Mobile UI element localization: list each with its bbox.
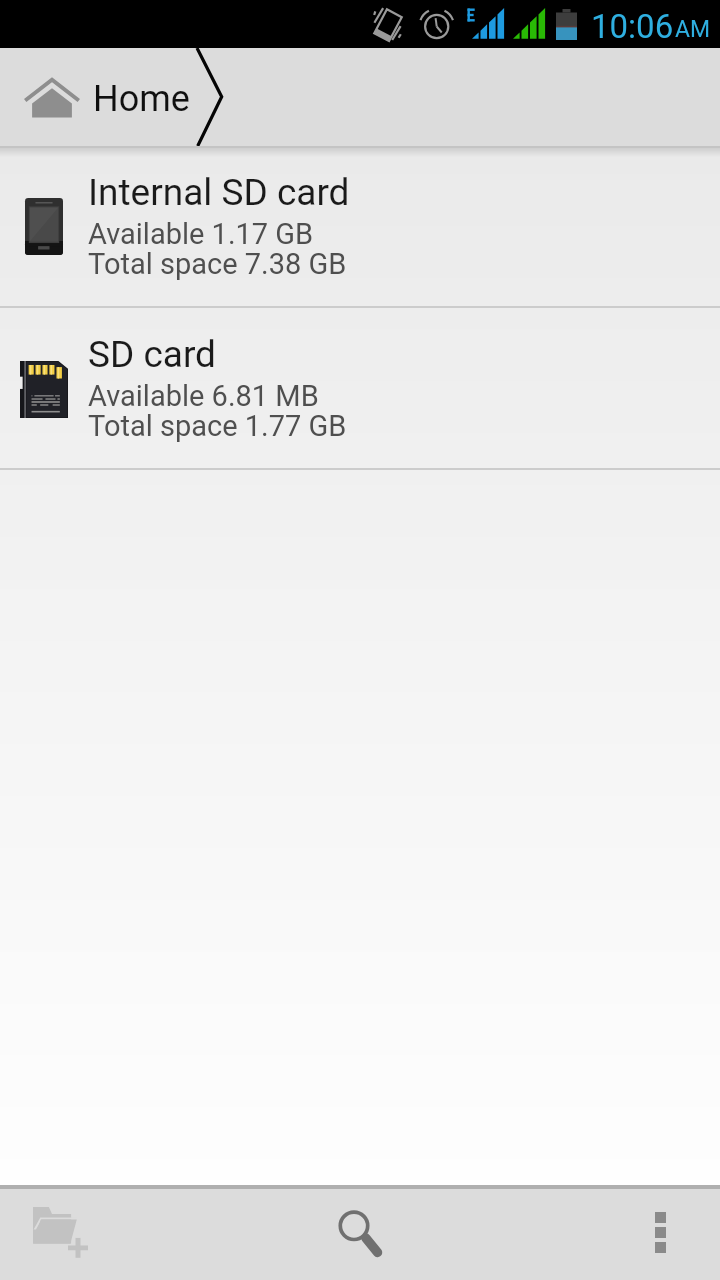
staticText: SD card (88, 333, 216, 376)
button[interactable]: More options (480, 1189, 720, 1280)
staticText: Total space 1.77 GB (88, 409, 347, 443)
button[interactable]: SD card (0, 308, 720, 468)
staticText: Home (93, 78, 190, 120)
staticText: 10:06 (591, 7, 674, 46)
button[interactable]: Home (0, 48, 720, 146)
button[interactable]: Internal SD card (0, 148, 720, 306)
button[interactable]: Search (240, 1189, 480, 1280)
staticText: Internal SD card (88, 171, 350, 214)
staticText: Available 6.81 MB (88, 379, 319, 413)
staticText: Total space 7.38 GB (88, 247, 347, 281)
staticText: Available 1.17 GB (88, 217, 314, 251)
staticText: AM (675, 16, 711, 43)
button[interactable]: New folder (0, 1189, 240, 1280)
